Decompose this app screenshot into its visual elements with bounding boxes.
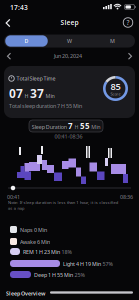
staticText: 85: [110, 80, 120, 93]
staticText: Total sleep duration 7 H 55 Min: [9, 102, 82, 110]
staticText: Jun 20, 2024: [54, 52, 82, 60]
staticText: Light 4 H 19 Min: [63, 260, 101, 267]
button[interactable]: [0, 0, 16, 30]
staticText: 00:41: [7, 193, 20, 201]
staticText: 18%: [61, 248, 71, 255]
staticText: H: [24, 92, 28, 100]
staticText: Sleep Overview: [6, 290, 45, 297]
staticText: Min: [45, 92, 54, 100]
staticText: Sleep Duration: [32, 123, 67, 131]
staticText: W: [67, 37, 72, 45]
staticText: 57%: [102, 260, 112, 267]
staticText: 08:36: [120, 193, 133, 201]
staticText: as a nap: [8, 205, 24, 211]
staticText: H: [74, 123, 78, 131]
button[interactable]: W: [48, 35, 90, 47]
staticText: Score: [110, 91, 120, 97]
staticText: Note: If sleep duration is less than 1 h…: [8, 200, 118, 205]
button[interactable]: D: [5, 35, 48, 47]
staticText: 55: [80, 121, 90, 131]
button[interactable]: ?: [121, 15, 135, 29]
staticText: Naps 0 Min: [20, 226, 47, 233]
staticText: Sleep: [60, 18, 78, 27]
button[interactable]: [0, 0, 139, 14]
staticText: Total Sleep Time: [16, 75, 55, 82]
staticText: Awake 6 Min: [20, 238, 50, 245]
staticText: 17:43: [10, 3, 28, 12]
staticText: 37: [30, 85, 44, 101]
button[interactable]: [0, 0, 18, 14]
button[interactable]: M: [91, 35, 133, 47]
staticText: Deep 1 H 55 Min: [34, 271, 73, 278]
staticText: REM 1 H 23 Min: [23, 248, 60, 255]
staticText: ?: [126, 18, 129, 27]
staticText: 7: [68, 121, 73, 131]
staticText: 00:41-08:36: [54, 133, 82, 140]
staticText: 25%: [74, 271, 84, 278]
staticText: M: [110, 37, 115, 45]
staticText: D: [24, 37, 28, 45]
staticText: Min: [91, 123, 100, 131]
staticText: 07: [9, 85, 23, 101]
